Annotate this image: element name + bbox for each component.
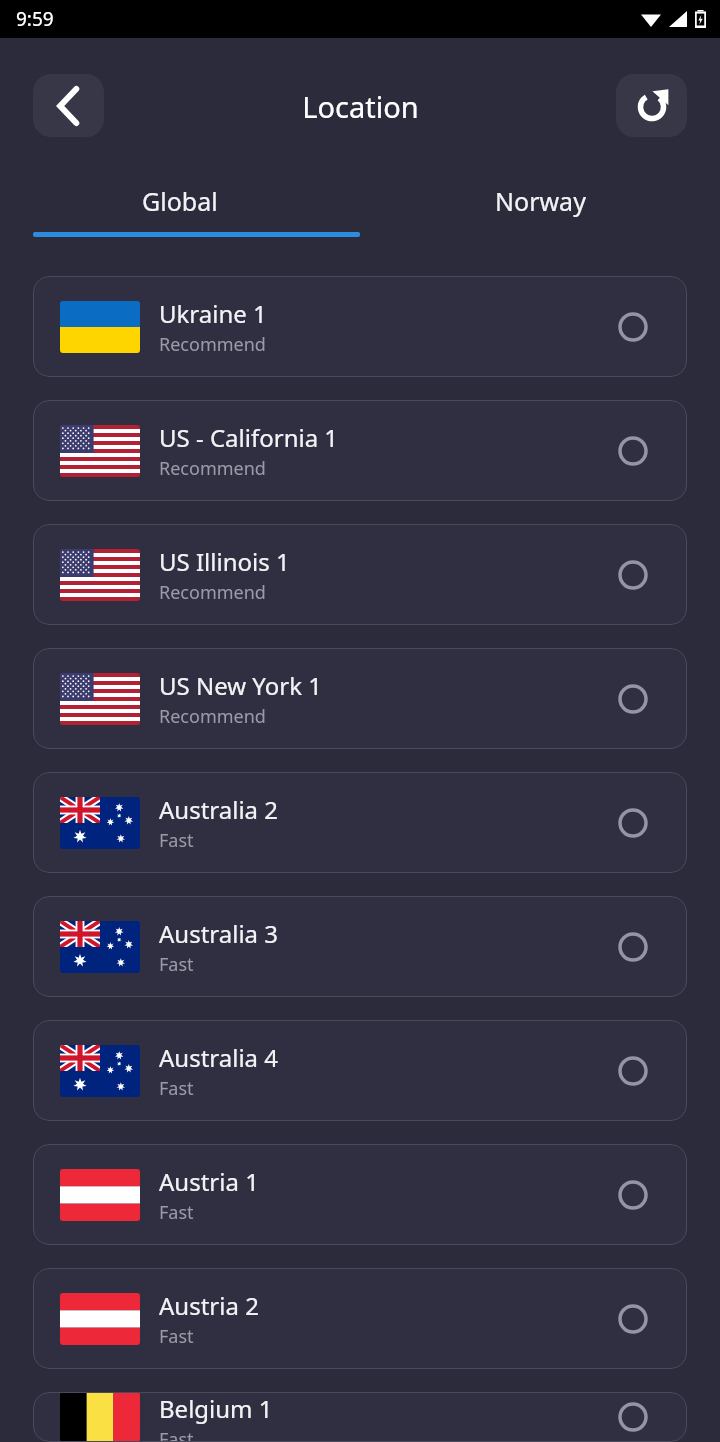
button[interactable] [602, 792, 664, 854]
button[interactable] [602, 1288, 664, 1350]
button[interactable] [602, 1392, 664, 1442]
staticText: Recommend [159, 332, 266, 357]
button[interactable]: Belgium 1 [33, 1392, 687, 1442]
button[interactable] [602, 544, 664, 606]
staticText: US Illinois 1 [159, 545, 290, 578]
button[interactable]: Austria 2 [33, 1268, 687, 1369]
button[interactable]: Global [0, 170, 360, 232]
staticText: Fast [159, 1200, 194, 1225]
button[interactable]: Australia 3 [33, 896, 687, 997]
staticText: Recommend [159, 580, 266, 605]
button[interactable] [602, 1164, 664, 1226]
staticText: Australia 4 [159, 1041, 279, 1074]
staticText: Norway [495, 184, 586, 218]
staticText: Australia 2 [159, 793, 279, 826]
button[interactable] [602, 916, 664, 978]
staticText: US New York 1 [159, 669, 322, 702]
button[interactable]: Norway [360, 170, 720, 232]
button[interactable]: Australia 2 [33, 772, 687, 873]
button[interactable] [602, 668, 664, 730]
staticText: Fast [159, 1427, 194, 1442]
staticText: Belgium 1 [159, 1392, 273, 1425]
staticText: Recommend [159, 456, 266, 481]
button[interactable]: Back [33, 74, 104, 137]
staticText: Location [302, 87, 419, 126]
staticText: Fast [159, 828, 194, 853]
button[interactable] [602, 420, 664, 482]
button[interactable]: Australia 4 [33, 1020, 687, 1121]
staticText: US - California 1 [159, 421, 339, 454]
button[interactable] [602, 296, 664, 358]
button[interactable]: Ukraine 1 [33, 276, 687, 377]
staticText: Austria 2 [159, 1289, 259, 1322]
staticText: Australia 3 [159, 917, 279, 950]
button[interactable]: US New York 1 [33, 648, 687, 749]
staticText: Fast [159, 952, 194, 977]
button[interactable]: US - California 1 [33, 400, 687, 501]
staticText: Global [142, 184, 218, 218]
staticText: Ukraine 1 [159, 297, 267, 330]
staticText: Fast [159, 1324, 194, 1349]
button[interactable]: Refresh [616, 74, 687, 137]
button[interactable] [602, 1040, 664, 1102]
button[interactable]: Austria 1 [33, 1144, 687, 1245]
staticText: 9:59 [16, 6, 54, 32]
staticText: Fast [159, 1076, 194, 1101]
staticText: Austria 1 [159, 1165, 259, 1198]
button[interactable]: US Illinois 1 [33, 524, 687, 625]
staticText: Recommend [159, 704, 266, 729]
